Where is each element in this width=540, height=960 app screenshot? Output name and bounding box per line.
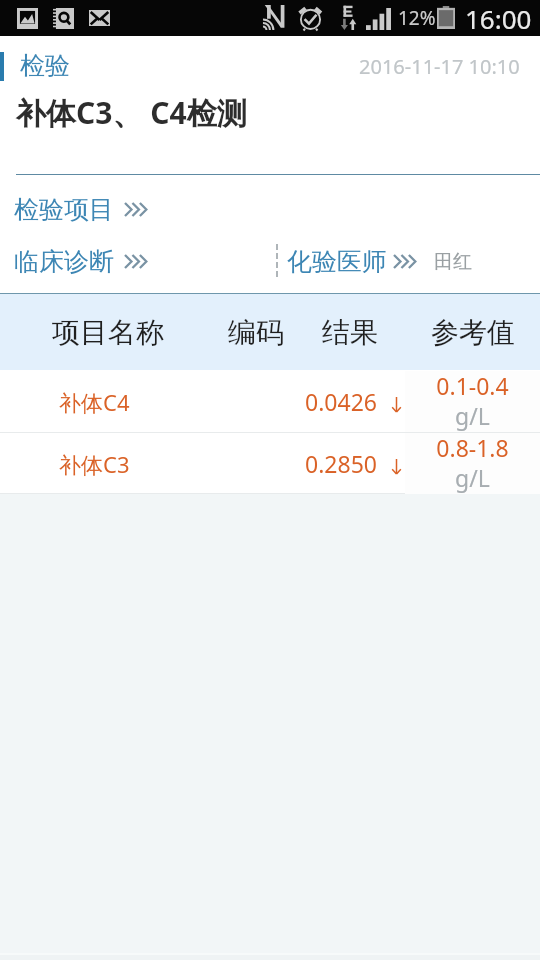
staticText: 0.1-0.4 <box>436 370 509 401</box>
staticText: 2016-11-17 10:10 <box>359 53 520 80</box>
staticText: 检验项目 <box>14 194 114 225</box>
button[interactable]: 补体C4 <box>0 371 405 432</box>
staticText: 补体C3、 C4检测 <box>16 92 247 133</box>
staticText: 0.0426 <box>305 386 377 417</box>
staticText: 结果 <box>322 315 378 350</box>
button[interactable]: 结果 <box>280 294 420 370</box>
staticText: g/L <box>455 462 490 493</box>
staticText: g/L <box>455 400 490 431</box>
button[interactable]: 补体C3 <box>0 433 405 494</box>
staticText: 参考值 <box>431 315 515 350</box>
staticText: 临床诊断 <box>14 246 114 277</box>
button[interactable]: 化验医师 <box>287 246 418 277</box>
button[interactable]: 参考值 <box>403 294 540 370</box>
staticText: 化验医师 <box>287 246 387 277</box>
staticText: 补体C3 <box>59 449 130 479</box>
staticText: 16:00 <box>465 1 532 36</box>
staticText: 检验 <box>20 50 70 81</box>
button[interactable]: 0.1-0.4 <box>405 371 540 432</box>
button[interactable]: 项目名称 <box>38 294 178 370</box>
staticText: 12% <box>398 5 436 31</box>
button[interactable]: 编码 <box>186 294 326 370</box>
button[interactable]: 0.8-1.8 <box>405 433 540 494</box>
staticText: 田红 <box>434 250 472 274</box>
button[interactable]: 检验 <box>20 50 70 81</box>
staticText: 编码 <box>228 315 284 350</box>
staticText: 项目名称 <box>52 315 164 350</box>
staticText: 0.2850 <box>305 448 377 479</box>
button[interactable]: 临床诊断 <box>14 246 149 277</box>
staticText: 0.8-1.8 <box>436 432 509 463</box>
staticText: 补体C4 <box>59 387 130 417</box>
button[interactable]: 检验项目 <box>14 194 149 225</box>
